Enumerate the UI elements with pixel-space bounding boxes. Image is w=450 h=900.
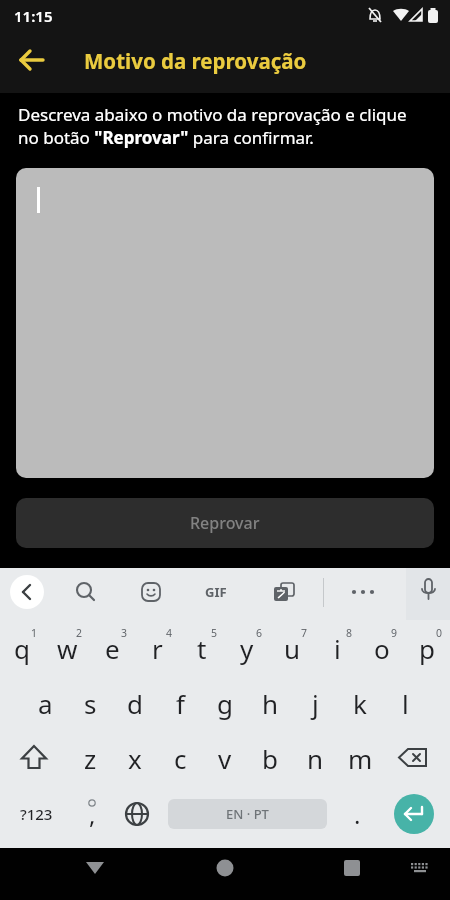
staticText: b: [262, 741, 278, 776]
button[interactable]: EN · PT: [168, 799, 327, 829]
staticText: .: [354, 798, 361, 831]
staticText: d: [127, 686, 143, 721]
button[interactable]: [394, 794, 434, 834]
button[interactable]: m: [338, 733, 382, 783]
staticText: EN · PT: [226, 805, 269, 823]
button[interactable]: [414, 577, 444, 607]
button[interactable]: .: [341, 794, 373, 834]
button[interactable]: b: [248, 733, 292, 783]
button[interactable]: v: [203, 733, 247, 783]
staticText: GIF: [205, 583, 227, 601]
staticText: p: [419, 631, 435, 666]
button[interactable]: [13, 738, 53, 778]
staticText: ?123: [20, 804, 53, 824]
button[interactable]: [77, 850, 113, 886]
staticText: e: [105, 631, 120, 666]
button[interactable]: [402, 850, 438, 886]
button[interactable]: u: [270, 623, 314, 673]
staticText: l: [402, 686, 409, 721]
staticText: 8: [346, 626, 353, 640]
button[interactable]: a: [23, 678, 67, 728]
button[interactable]: ?123: [12, 794, 60, 834]
button[interactable]: i: [315, 623, 359, 673]
button[interactable]: c: [158, 733, 202, 783]
button[interactable]: [395, 738, 435, 778]
button[interactable]: [72, 578, 100, 606]
staticText: j: [312, 686, 319, 721]
button[interactable]: w: [45, 623, 89, 673]
button[interactable]: f: [158, 678, 202, 728]
staticText: 3: [121, 626, 128, 640]
staticText: c: [174, 741, 187, 776]
staticText: f: [176, 686, 185, 721]
button[interactable]: Reprovar: [16, 498, 434, 548]
staticText: v: [218, 741, 232, 776]
button[interactable]: q: [0, 623, 44, 673]
button[interactable]: [137, 578, 165, 606]
staticText: h: [262, 686, 279, 721]
button[interactable]: j: [293, 678, 337, 728]
button[interactable]: k: [338, 678, 382, 728]
staticText: 0: [436, 626, 443, 640]
staticText: z: [84, 741, 97, 776]
staticText: u: [284, 631, 301, 666]
staticText: ,: [89, 798, 96, 831]
staticText: Descreva abaixo o motivo da reprovação e…: [18, 103, 407, 149]
staticText: m: [348, 741, 373, 776]
button[interactable]: [270, 578, 298, 606]
button[interactable]: r: [135, 623, 179, 673]
button[interactable]: [16, 168, 434, 478]
button[interactable]: d: [113, 678, 157, 728]
staticText: a: [38, 686, 53, 721]
button[interactable]: l: [383, 678, 427, 728]
button[interactable]: t: [180, 623, 224, 673]
button[interactable]: [12, 40, 52, 80]
staticText: 11:15: [14, 6, 53, 26]
staticText: 4: [166, 626, 173, 640]
button[interactable]: n: [293, 733, 337, 783]
button[interactable]: p: [405, 623, 449, 673]
staticText: 6: [256, 626, 263, 640]
staticText: x: [128, 741, 142, 776]
button[interactable]: e: [90, 623, 134, 673]
staticText: y: [240, 631, 254, 666]
staticText: 2: [76, 626, 83, 640]
button[interactable]: o: [360, 623, 404, 673]
button[interactable]: [10, 575, 44, 609]
button[interactable]: ,: [76, 794, 108, 834]
button[interactable]: z: [68, 733, 112, 783]
staticText: Motivo da reprovação: [84, 47, 307, 75]
staticText: q: [14, 631, 30, 666]
staticText: k: [353, 686, 367, 721]
staticText: w: [57, 631, 78, 666]
staticText: t: [197, 631, 207, 666]
staticText: Reprovar: [190, 512, 260, 534]
button[interactable]: [334, 850, 370, 886]
staticText: 1: [31, 626, 38, 640]
button[interactable]: g: [203, 678, 247, 728]
staticText: g: [217, 686, 233, 721]
button[interactable]: GIF: [196, 578, 236, 606]
staticText: r: [152, 631, 163, 666]
staticText: o: [374, 631, 390, 666]
button[interactable]: [207, 850, 243, 886]
button[interactable]: h: [248, 678, 292, 728]
staticText: 9: [391, 626, 398, 640]
staticText: s: [84, 686, 97, 721]
button[interactable]: x: [113, 733, 157, 783]
staticText: 7: [301, 626, 308, 640]
staticText: i: [334, 631, 341, 666]
button[interactable]: [348, 585, 380, 599]
button[interactable]: y: [225, 623, 269, 673]
staticText: n: [307, 741, 324, 776]
staticText: 5: [211, 626, 218, 640]
button[interactable]: s: [68, 678, 112, 728]
button[interactable]: [122, 799, 152, 829]
